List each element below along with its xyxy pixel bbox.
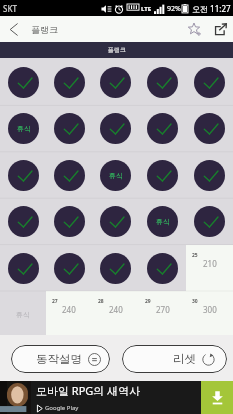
staticText: 플랭크: [31, 24, 58, 35]
button[interactable]: [139, 59, 186, 105]
staticText: 휴식: [109, 171, 123, 180]
staticText: 27: [52, 298, 58, 305]
staticText: 28: [98, 298, 104, 305]
button[interactable]: 25: [186, 245, 233, 291]
staticText: 25: [192, 252, 198, 259]
button[interactable]: [0, 198, 46, 245]
staticText: 240: [109, 304, 123, 315]
button[interactable]: 휴식: [0, 105, 46, 152]
staticText: 30: [192, 298, 198, 305]
button[interactable]: [46, 152, 92, 198]
button[interactable]: Back: [0, 16, 28, 42]
staticText: 92%: [167, 4, 181, 14]
staticText: 플랭크: [108, 46, 126, 54]
button[interactable]: [139, 152, 186, 198]
button[interactable]: Install: [201, 381, 233, 414]
staticText: 270: [156, 304, 170, 315]
button[interactable]: [139, 105, 186, 152]
button[interactable]: Share: [207, 16, 233, 42]
button[interactable]: [186, 152, 233, 198]
button[interactable]: [92, 105, 139, 152]
staticText: 휴식: [16, 310, 30, 319]
staticText: 휴식: [17, 124, 31, 133]
button[interactable]: 리셋: [122, 345, 227, 373]
staticText: 모바일 RPG의 새역사: [36, 383, 141, 398]
button[interactable]: [46, 59, 92, 105]
button[interactable]: [0, 245, 46, 291]
button[interactable]: 휴식: [92, 152, 139, 198]
staticText: 동작설명: [36, 352, 82, 366]
button[interactable]: [92, 198, 139, 245]
staticText: 오전 11:27: [192, 3, 231, 14]
staticText: 210: [203, 258, 217, 269]
button[interactable]: 휴식: [139, 198, 186, 245]
staticText: 리셋: [173, 352, 196, 366]
button[interactable]: [46, 105, 92, 152]
button[interactable]: [186, 59, 233, 105]
button[interactable]: [46, 245, 92, 291]
button[interactable]: [46, 198, 92, 245]
staticText: 휴식: [156, 217, 170, 226]
staticText: Google Play: [45, 404, 79, 412]
staticText: LTE: [141, 5, 152, 13]
button[interactable]: 동작설명: [11, 345, 110, 373]
staticText: 300: [203, 304, 217, 315]
button[interactable]: [186, 105, 233, 152]
button[interactable]: 휴식: [0, 291, 46, 337]
button[interactable]: [0, 152, 46, 198]
staticText: SKT: [3, 3, 17, 14]
button[interactable]: 29: [139, 291, 186, 337]
staticText: 240: [62, 304, 76, 315]
button[interactable]: Add to favourites: [181, 16, 207, 42]
button[interactable]: [92, 245, 139, 291]
button[interactable]: 27: [46, 291, 92, 337]
button[interactable]: 30: [186, 291, 233, 337]
button[interactable]: [186, 198, 233, 245]
button[interactable]: [92, 59, 139, 105]
button[interactable]: [139, 245, 186, 291]
button[interactable]: 28: [92, 291, 139, 337]
staticText: 29: [145, 298, 151, 305]
button[interactable]: [0, 59, 46, 105]
